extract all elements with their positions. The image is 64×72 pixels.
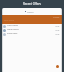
staticText: OFFER <box>53 16 60 19</box>
staticText: Sofia Klein <box>7 32 18 35</box>
staticText: Recent Offers <box>23 2 41 6</box>
staticText: 12:30 <box>55 33 60 35</box>
staticText: Save more <box>4 19 14 22</box>
button[interactable]: Add <box>56 65 59 68</box>
staticText: Mark Rivera <box>7 28 19 31</box>
button[interactable]: Alice Wong <box>2 24 62 28</box>
staticText: Today <box>27 10 34 13</box>
button[interactable]: Sofia Klein <box>2 32 62 36</box>
staticText: 12:30 <box>55 25 60 27</box>
button[interactable]: Mark Rivera <box>2 28 62 32</box>
staticText: 12:30 <box>55 29 60 31</box>
button[interactable]: OFFER <box>2 15 62 24</box>
staticText: Alice Wong <box>7 24 18 27</box>
